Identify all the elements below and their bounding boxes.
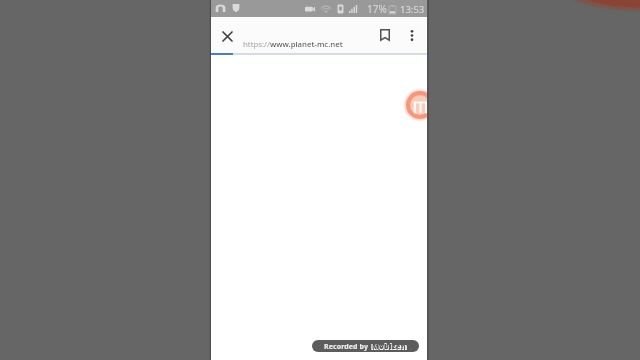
staticText: Recorded by (324, 342, 368, 352)
button[interactable]: Bookmark (370, 18, 400, 52)
staticText: Mobizen (371, 341, 408, 352)
button[interactable]: Close (211, 19, 243, 53)
staticText: https:// (243, 39, 270, 50)
staticText: 17% (367, 2, 387, 16)
staticText: www.planet-mc.net (270, 39, 343, 50)
button[interactable]: More options (400, 18, 424, 52)
staticText: 13:53 (400, 3, 425, 16)
staticText: Mobizen (372, 342, 407, 352)
